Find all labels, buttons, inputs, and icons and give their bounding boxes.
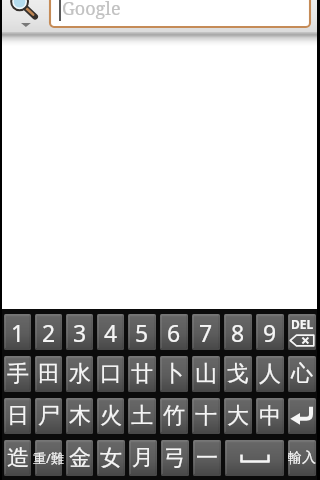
button[interactable]: 7 [190,314,222,350]
other: Delete [286,314,318,350]
other: Space [223,440,286,476]
button[interactable]: 日 [2,398,33,434]
staticText: 4 [104,317,118,348]
button[interactable]: 十 [190,398,222,434]
button[interactable]: 人 [254,356,286,392]
staticText: 手 [7,360,29,388]
staticText: 戈 [227,360,249,388]
button[interactable]: 尸 [33,398,64,434]
button[interactable]: Delete [286,314,318,350]
staticText: 6 [167,317,181,348]
staticText: 山 [195,360,217,388]
staticText: 尸 [38,402,60,430]
button[interactable]: Select search engine [0,0,47,33]
button[interactable]: 一 [191,440,223,476]
staticText: 一 [196,444,218,472]
staticText: Google [62,0,121,21]
button[interactable]: 田 [33,356,64,392]
staticText: 重/難 [33,449,64,467]
staticText: 女 [100,444,122,472]
button[interactable]: 戈 [222,356,254,392]
staticText: DEL [291,316,314,332]
button[interactable]: 1 [2,314,33,350]
staticText: 7 [199,317,213,348]
staticText: 田 [38,360,60,388]
button[interactable]: 口 [95,356,126,392]
button[interactable]: 金 [64,440,95,476]
staticText: 廿 [131,360,153,388]
staticText: 土 [131,402,153,430]
button[interactable]: 6 [158,314,190,350]
staticText: 卜 [163,360,185,388]
button[interactable]: 木 [64,398,95,434]
button[interactable]: 重/難 [33,440,64,476]
button[interactable]: Google [49,0,311,28]
staticText: 中 [259,402,281,430]
staticText: 3 [73,317,87,348]
staticText: 口 [100,360,122,388]
other: Enter [286,398,318,434]
button[interactable]: 4 [95,314,126,350]
button[interactable]: 造 [2,440,33,476]
button[interactable]: 3 [64,314,95,350]
button[interactable]: 火 [95,398,126,434]
button[interactable]: 8 [222,314,254,350]
staticText: 水 [69,360,91,388]
staticText: 心 [291,360,313,388]
button[interactable]: Space [223,440,286,476]
staticText: 金 [69,444,91,472]
button[interactable]: 5 [126,314,158,350]
staticText: 月 [132,444,154,472]
button[interactable]: 卜 [158,356,190,392]
staticText: 大 [227,402,249,430]
staticText: 9 [263,317,277,348]
button[interactable]: 山 [190,356,222,392]
staticText: 十 [195,402,217,430]
button[interactable]: 心 [286,356,318,392]
button[interactable]: 弓 [159,440,191,476]
button[interactable]: 手 [2,356,33,392]
button[interactable]: 水 [64,356,95,392]
button[interactable]: 廿 [126,356,158,392]
button[interactable]: 女 [95,440,127,476]
staticText: 2 [42,317,56,348]
staticText: 人 [259,360,281,388]
staticText: 輸入 [288,449,316,467]
staticText: 日 [7,402,29,430]
button[interactable]: 大 [222,398,254,434]
staticText: 木 [69,402,91,430]
button[interactable]: Enter [286,398,318,434]
button[interactable]: 土 [126,398,158,434]
staticText: 造 [7,444,29,472]
staticText: 竹 [163,402,185,430]
button[interactable]: 月 [127,440,159,476]
staticText: 火 [100,402,122,430]
button[interactable]: 中 [254,398,286,434]
button[interactable]: 2 [33,314,64,350]
button[interactable]: 竹 [158,398,190,434]
button[interactable]: 9 [254,314,286,350]
staticText: 1 [11,317,25,348]
staticText: 8 [231,317,245,348]
button[interactable]: 輸入 [286,440,318,476]
staticText: 弓 [164,444,186,472]
staticText: 5 [135,317,149,348]
